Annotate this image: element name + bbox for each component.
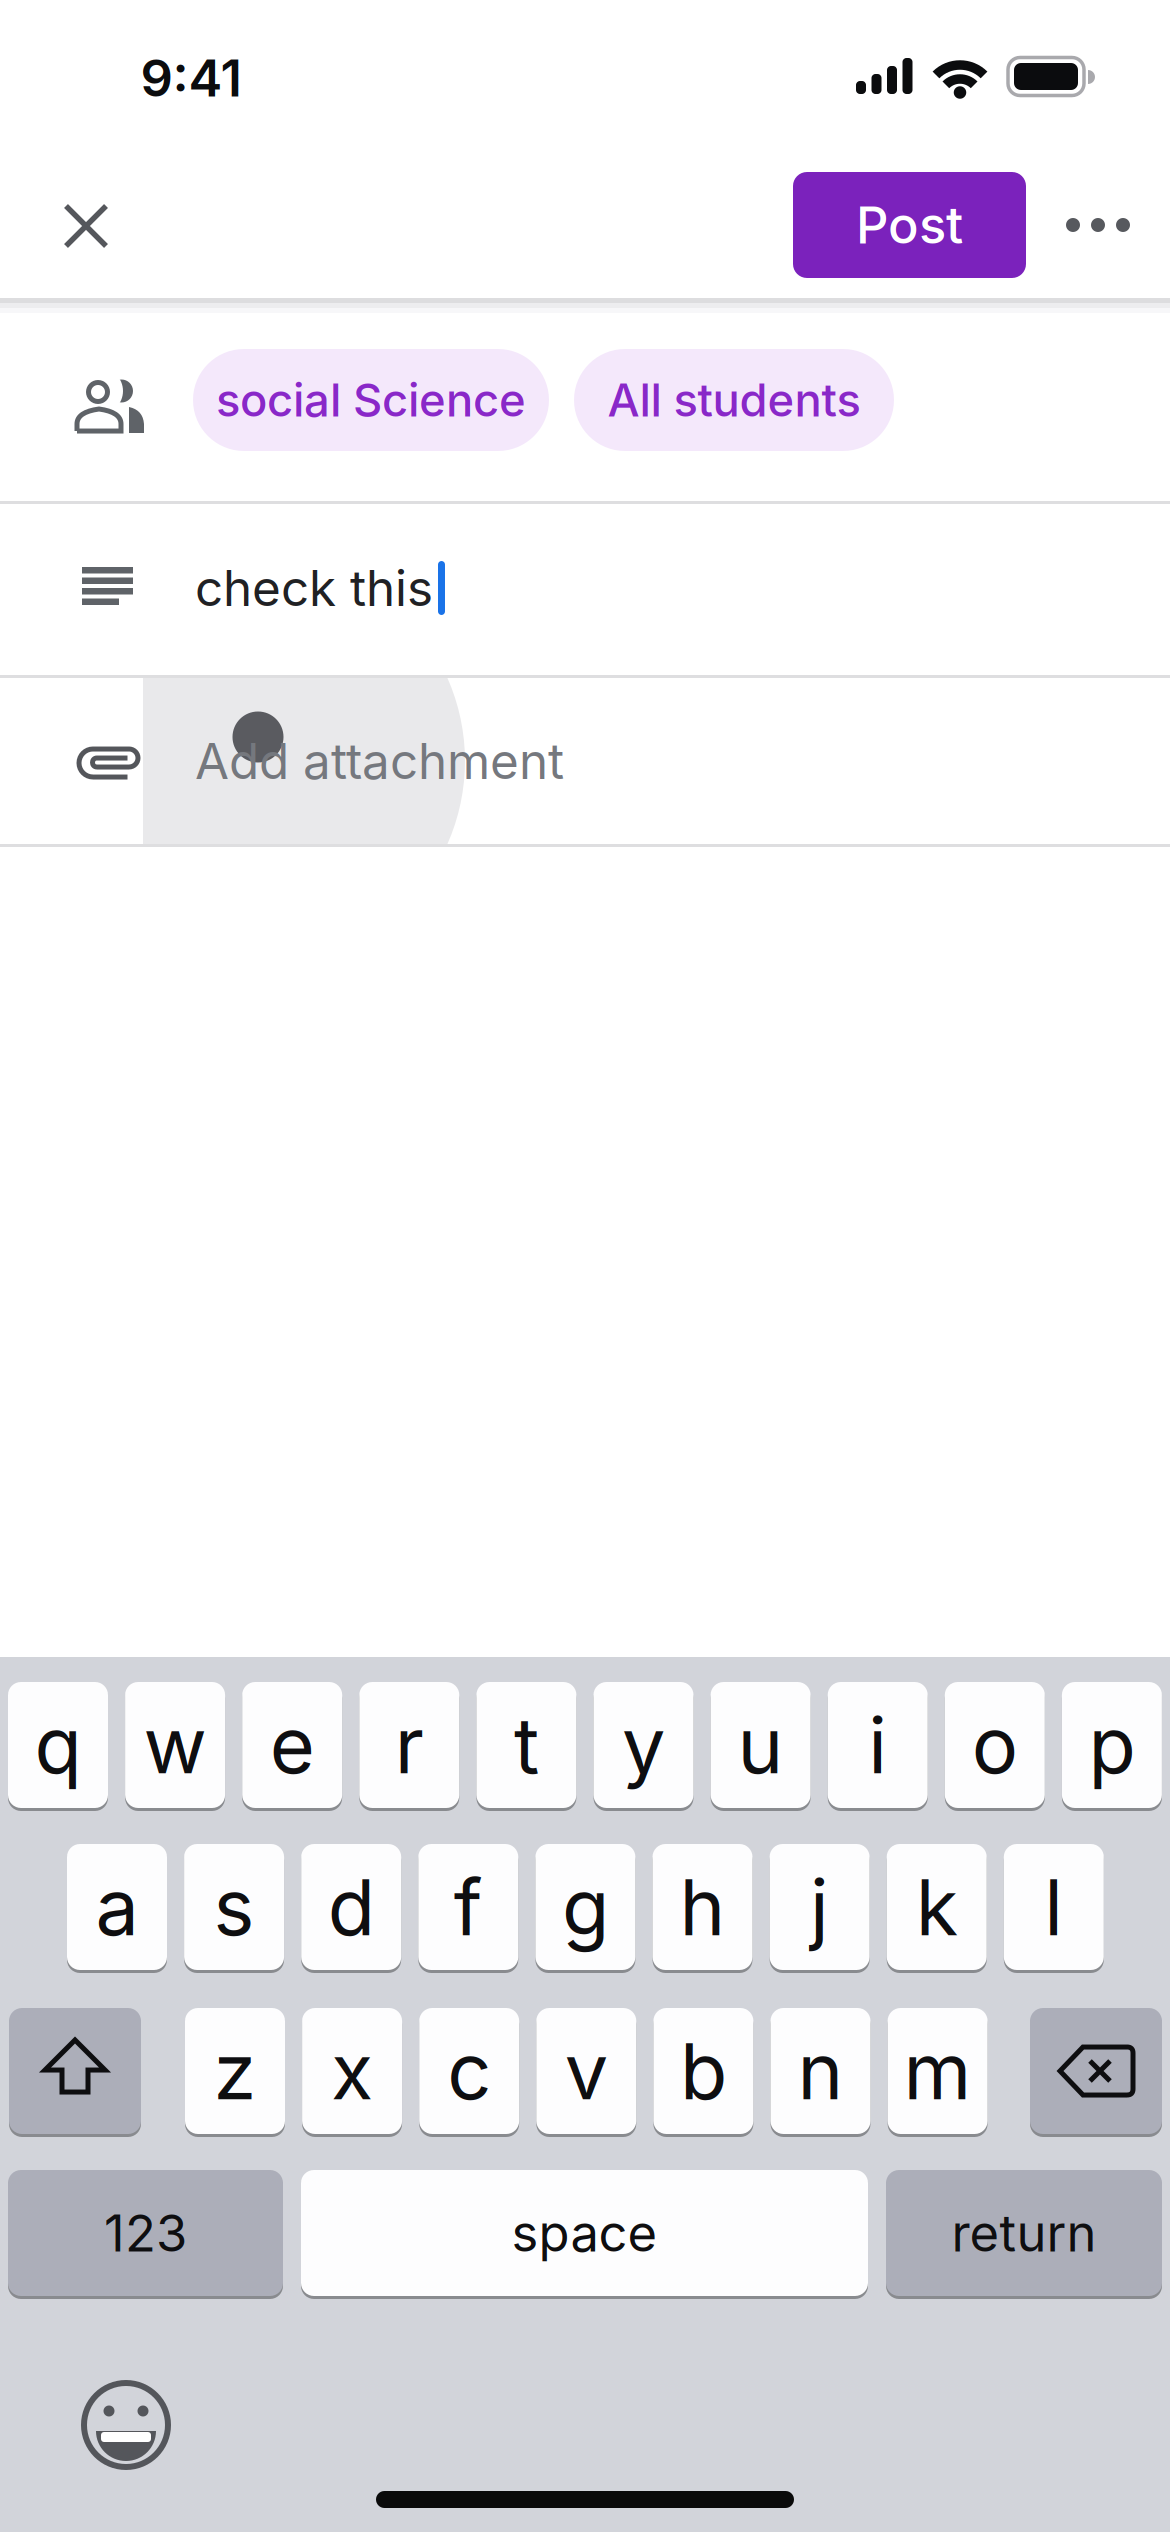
button[interactable]: v — [536, 2006, 636, 2136]
button[interactable]: u — [711, 1680, 811, 1810]
button[interactable]: a — [67, 1842, 167, 1972]
staticText: Post — [856, 195, 963, 255]
button[interactable]: p — [1062, 1680, 1162, 1810]
button[interactable]: q — [8, 1680, 108, 1810]
staticText: q — [34, 1699, 81, 1791]
staticText: b — [680, 2025, 727, 2117]
button[interactable]: h — [652, 1842, 752, 1972]
button[interactable]: Post — [793, 172, 1026, 278]
button[interactable]: r — [359, 1680, 459, 1810]
button[interactable]: m — [888, 2006, 988, 2136]
button[interactable]: x — [302, 2006, 402, 2136]
staticText: e — [270, 1699, 315, 1791]
button[interactable]: f — [418, 1842, 518, 1972]
button[interactable]: Shift — [9, 2006, 141, 2136]
staticText: r — [395, 1699, 424, 1791]
staticText: k — [916, 1861, 958, 1953]
staticText: 123 — [104, 2203, 187, 2263]
button[interactable]: b — [653, 2006, 753, 2136]
staticText: p — [1088, 1699, 1135, 1791]
staticText: l — [1044, 1861, 1063, 1953]
staticText: s — [214, 1861, 255, 1953]
button[interactable]: Add attachment — [0, 678, 1170, 844]
staticText: return — [951, 2203, 1096, 2263]
staticText: y — [622, 1699, 665, 1791]
button[interactable]: s — [184, 1842, 284, 1972]
button[interactable]: k — [887, 1842, 987, 1972]
staticText: f — [454, 1861, 483, 1953]
button[interactable]: return — [886, 2168, 1162, 2298]
staticText: a — [95, 1861, 138, 1953]
button[interactable]: i — [828, 1680, 928, 1810]
staticText: social Science — [216, 373, 526, 427]
button[interactable]: 123 — [8, 2168, 283, 2298]
staticText: i — [868, 1699, 887, 1791]
button[interactable]: space — [301, 2168, 868, 2298]
button[interactable]: Close — [46, 186, 126, 266]
button[interactable]: y — [593, 1680, 693, 1810]
button[interactable]: e — [242, 1680, 342, 1810]
staticText: n — [797, 2025, 843, 2117]
staticText: j — [810, 1861, 829, 1953]
staticText: d — [328, 1861, 375, 1953]
staticText: m — [904, 2025, 972, 2117]
staticText: u — [738, 1699, 784, 1791]
staticText: t — [514, 1699, 539, 1791]
button[interactable]: Delete — [1030, 2006, 1162, 2136]
button[interactable]: c — [419, 2006, 519, 2136]
button[interactable]: t — [476, 1680, 576, 1810]
staticText: Add attachment — [195, 732, 564, 790]
staticText: x — [331, 2025, 373, 2117]
staticText: h — [679, 1861, 725, 1953]
button[interactable]: w — [125, 1680, 225, 1810]
button[interactable]: More options — [1053, 185, 1143, 265]
button[interactable]: Emoji — [78, 2377, 174, 2473]
staticText: g — [562, 1861, 609, 1953]
button[interactable]: z — [185, 2006, 285, 2136]
staticText: check this — [195, 559, 433, 617]
button[interactable]: social Science — [193, 349, 549, 451]
button[interactable]: d — [301, 1842, 401, 1972]
staticText: c — [447, 2025, 491, 2117]
button[interactable]: j — [770, 1842, 870, 1972]
button[interactable]: l — [1004, 1842, 1104, 1972]
staticText: v — [565, 2025, 608, 2117]
staticText: z — [213, 2025, 256, 2117]
button[interactable]: All students — [574, 349, 894, 451]
staticText: o — [972, 1699, 1018, 1791]
button[interactable]: g — [535, 1842, 635, 1972]
staticText: All students — [607, 373, 860, 427]
button[interactable]: n — [770, 2006, 870, 2136]
staticText: w — [144, 1699, 207, 1791]
staticText: 9:41 — [140, 48, 241, 108]
staticText: space — [511, 2203, 657, 2263]
button[interactable]: o — [945, 1680, 1045, 1810]
